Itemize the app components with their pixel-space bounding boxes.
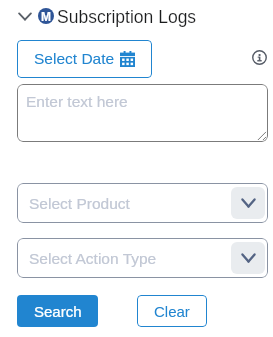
button[interactable]: Information <box>245 43 273 71</box>
button[interactable]: Select Action Type <box>17 238 268 278</box>
staticText: Select Date <box>34 50 115 67</box>
button[interactable]: Search <box>17 295 98 327</box>
button[interactable]: Enter text here <box>17 84 268 142</box>
button[interactable]: Collapse section <box>17 7 33 26</box>
staticText: Clear <box>154 303 190 320</box>
staticText: Enter text here <box>26 93 128 110</box>
staticText: M <box>41 10 51 23</box>
button[interactable]: Select Date <box>17 40 152 78</box>
button[interactable]: Clear <box>137 295 207 327</box>
staticText: Select Action Type <box>29 250 157 267</box>
staticText: Select Product <box>29 195 130 212</box>
staticText: Search <box>34 303 82 320</box>
button[interactable]: Select Product <box>17 183 268 223</box>
staticText: Subscription Logs <box>57 7 197 27</box>
